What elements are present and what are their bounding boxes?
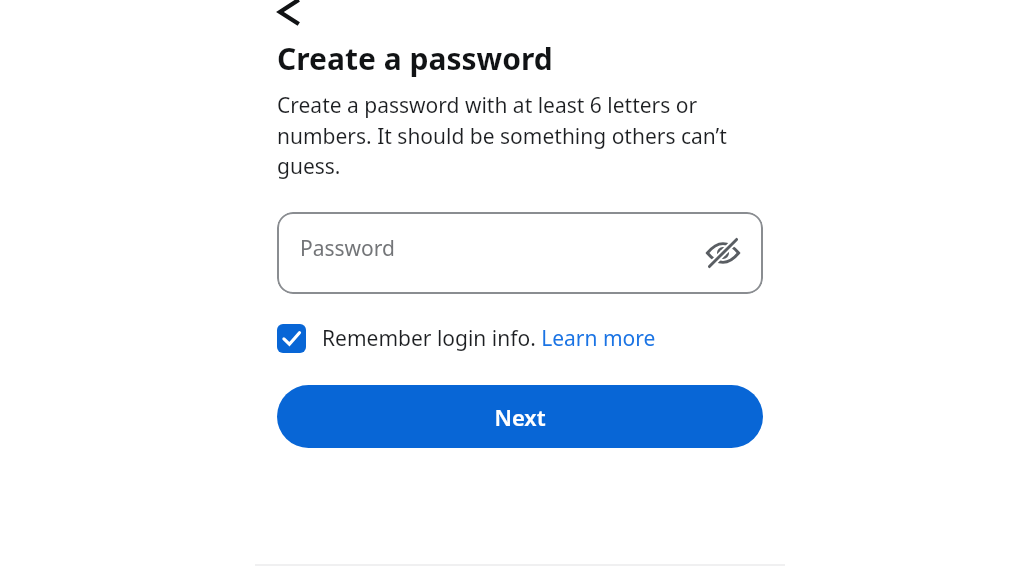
staticText: Create a password with at least 6 letter… <box>277 91 763 180</box>
staticText: Password <box>300 234 395 263</box>
button[interactable]: Remember login info. Learn more <box>277 324 763 353</box>
button[interactable]: Back <box>262 0 310 34</box>
button[interactable]: Password <box>277 212 763 294</box>
button[interactable]: Next <box>277 385 763 448</box>
staticText: Remember login info. Learn more <box>322 324 656 353</box>
staticText: Create a password <box>277 38 553 79</box>
staticText: Next <box>494 402 546 432</box>
button[interactable]: Show password <box>701 231 745 275</box>
